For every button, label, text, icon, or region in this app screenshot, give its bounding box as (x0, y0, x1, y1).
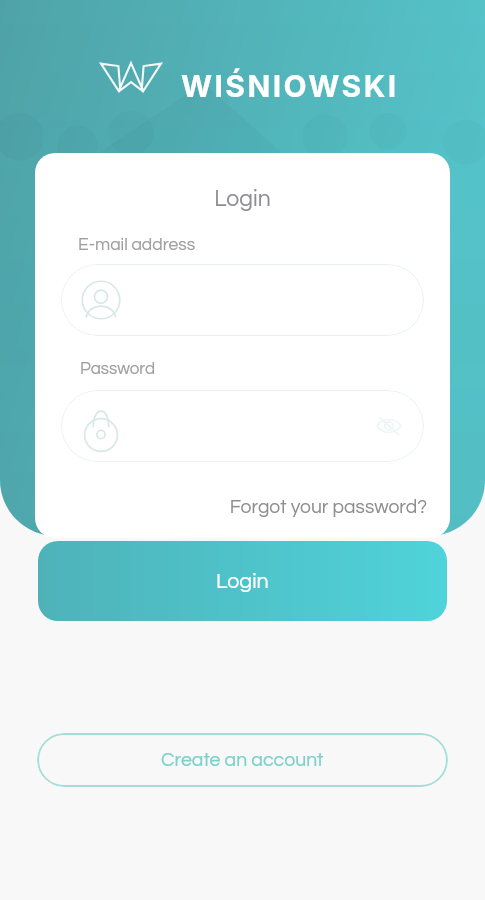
button[interactable] (61, 264, 424, 336)
button[interactable]: Create an account (37, 733, 448, 787)
staticText: E-mail address (78, 236, 196, 254)
staticText: Login (216, 570, 269, 592)
staticText: WIŚNIOWSKI (181, 68, 399, 104)
button[interactable]: Show password (61, 390, 424, 462)
button[interactable]: Forgot your password? (58, 497, 427, 517)
staticText: Create an account (161, 750, 324, 770)
button[interactable]: Login (38, 541, 447, 621)
staticText: Login (35, 187, 450, 211)
staticText: Password (80, 360, 156, 378)
button[interactable]: Show password (370, 407, 408, 445)
